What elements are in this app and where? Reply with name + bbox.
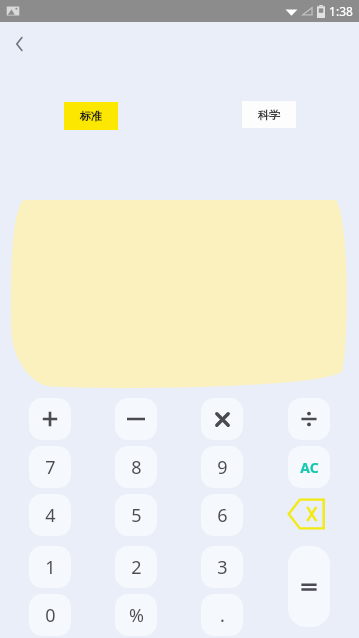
staticText: . (220, 603, 225, 628)
button[interactable]: % (115, 594, 157, 636)
staticText: 1 (45, 555, 56, 580)
button[interactable]: Back (4, 28, 36, 60)
button[interactable]: Delete (284, 492, 334, 536)
staticText: AC (300, 458, 319, 477)
button[interactable]: Plus (29, 398, 71, 440)
staticText: 2 (131, 555, 142, 580)
staticText: 6 (217, 503, 228, 528)
button[interactable]: Multiply (201, 398, 243, 440)
staticText: 7 (45, 455, 56, 480)
staticText: 1:38 (329, 3, 353, 19)
staticText: 0 (45, 603, 56, 628)
button[interactable]: 9 (201, 446, 243, 488)
button[interactable]: Equals (288, 546, 330, 627)
button[interactable]: AC (288, 446, 330, 488)
button[interactable]: 3 (201, 546, 243, 588)
button[interactable]: 6 (201, 494, 243, 536)
button[interactable]: 7 (29, 446, 71, 488)
button[interactable]: 8 (115, 446, 157, 488)
staticText: 科学 (258, 108, 280, 122)
button[interactable]: 4 (29, 494, 71, 536)
button[interactable]: . (201, 594, 243, 636)
button[interactable]: 5 (115, 494, 157, 536)
button[interactable]: 科学 (242, 101, 296, 128)
staticText: 4 (45, 503, 56, 528)
button[interactable]: Divide (288, 398, 330, 440)
button[interactable]: 2 (115, 546, 157, 588)
staticText: 9 (217, 455, 228, 480)
button[interactable]: 1 (29, 546, 71, 588)
staticText: 标准 (80, 109, 102, 123)
button[interactable]: 标准 (64, 102, 118, 130)
staticText: 3 (217, 555, 228, 580)
staticText: % (129, 603, 144, 628)
button[interactable]: 0 (29, 594, 71, 636)
staticText: 8 (131, 455, 142, 480)
button[interactable]: Minus (115, 398, 157, 440)
staticText: 5 (131, 503, 142, 528)
